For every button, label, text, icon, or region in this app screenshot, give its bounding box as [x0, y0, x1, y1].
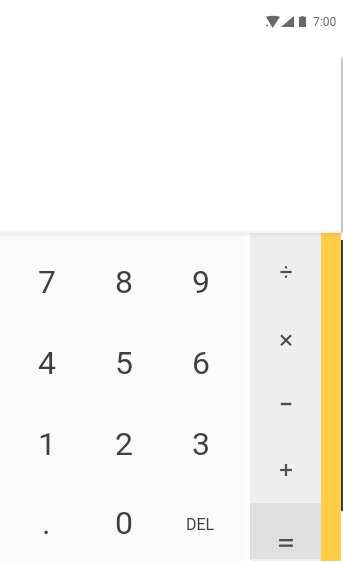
staticText: 9 — [192, 263, 210, 301]
staticText: 2 — [115, 425, 133, 463]
staticText: 0 — [115, 504, 133, 542]
button[interactable]: 8 — [85, 241, 162, 322]
staticText: 3 — [192, 425, 210, 463]
button[interactable]: 4 — [8, 322, 85, 403]
staticText: DEL — [186, 515, 215, 534]
button[interactable]: . — [8, 484, 85, 561]
button[interactable]: Add — [250, 437, 321, 503]
button[interactable]: 9 — [162, 241, 239, 322]
button[interactable]: 3 — [162, 403, 239, 484]
button[interactable]: Multiply — [250, 305, 321, 371]
button[interactable]: 2 — [85, 403, 162, 484]
staticText: 6 — [192, 344, 210, 382]
button[interactable]: 6 — [162, 322, 239, 403]
staticText: 7 — [38, 263, 56, 301]
button[interactable]: Subtract — [250, 371, 321, 437]
staticText: . — [42, 504, 51, 542]
staticText: 8 — [115, 263, 133, 301]
button[interactable]: Equals — [250, 503, 321, 559]
button[interactable]: 5 — [85, 322, 162, 403]
staticText: 5 — [115, 344, 133, 382]
button[interactable]: Divide — [250, 239, 321, 305]
staticText: 4 — [38, 344, 56, 382]
button[interactable]: 0 — [85, 484, 162, 561]
button[interactable]: 7 — [8, 241, 85, 322]
button[interactable]: DEL — [162, 484, 239, 561]
button[interactable]: 1 — [8, 403, 85, 484]
staticText: 7:00 — [313, 15, 337, 29]
staticText: 1 — [38, 425, 56, 463]
